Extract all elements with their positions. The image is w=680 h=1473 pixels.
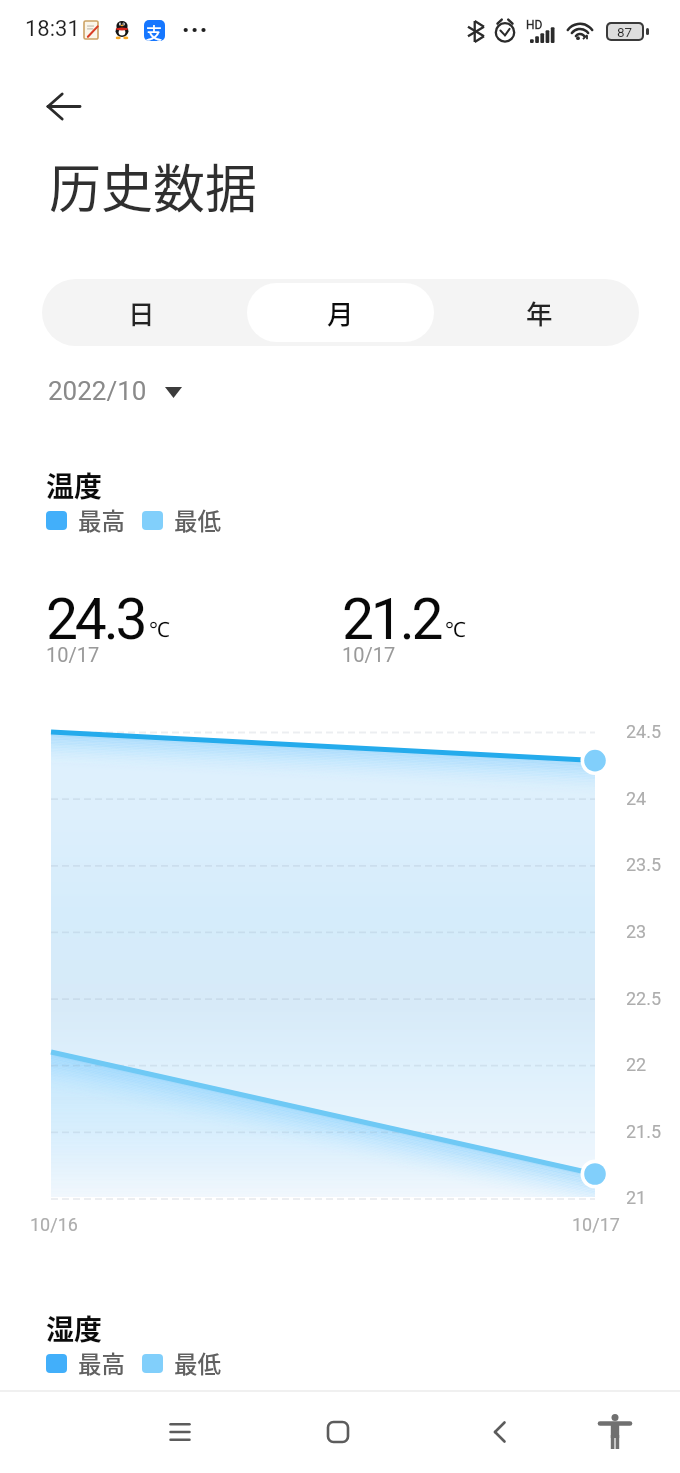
button[interactable]: 年: [446, 283, 633, 342]
staticText: 湿度: [46, 1308, 103, 1349]
staticText: 10/17: [46, 643, 100, 666]
staticText: 24.5: [626, 721, 662, 742]
button[interactable]: Home: [298, 1392, 378, 1472]
staticText: 23.5: [626, 854, 662, 875]
staticText: 10/17: [572, 1214, 620, 1235]
staticText: 10/16: [30, 1214, 78, 1235]
staticText: 月: [327, 293, 354, 331]
button[interactable]: Accessibility: [575, 1392, 655, 1472]
button[interactable]: Back: [33, 76, 93, 136]
staticText: HD: [526, 18, 543, 32]
staticText: 最低: [174, 1346, 221, 1380]
button[interactable]: Menu: [140, 1392, 220, 1472]
staticText: 年: [526, 293, 553, 331]
staticText: 23: [626, 921, 647, 942]
button[interactable]: 日: [48, 283, 235, 342]
staticText: 24: [626, 788, 647, 809]
staticText: 历史数据: [49, 148, 258, 223]
staticText: ℃: [149, 615, 170, 644]
staticText: 温度: [46, 465, 103, 506]
staticText: 10/17: [342, 643, 396, 666]
staticText: 87: [617, 24, 633, 39]
staticText: 最高: [78, 1346, 125, 1380]
button[interactable]: 2022/10: [48, 376, 182, 406]
button[interactable]: Back: [458, 1392, 538, 1472]
staticText: 最高: [78, 503, 125, 537]
staticText: 24.3: [46, 586, 145, 653]
staticText: 22.5: [626, 988, 662, 1009]
staticText: 日: [128, 293, 155, 331]
staticText: 2022/10: [48, 376, 147, 406]
button[interactable]: 月: [247, 283, 434, 342]
staticText: 最低: [174, 503, 221, 537]
staticText: 21.5: [626, 1121, 662, 1142]
staticText: ℃: [445, 615, 466, 644]
staticText: 支: [146, 20, 163, 41]
staticText: 18:31: [25, 16, 80, 42]
staticText: 22: [626, 1054, 647, 1075]
staticText: 21: [626, 1187, 647, 1208]
staticText: 21.2: [342, 586, 441, 653]
